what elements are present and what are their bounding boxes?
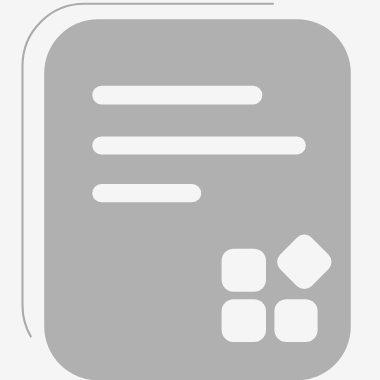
button[interactable]: Documents <box>0 0 380 380</box>
